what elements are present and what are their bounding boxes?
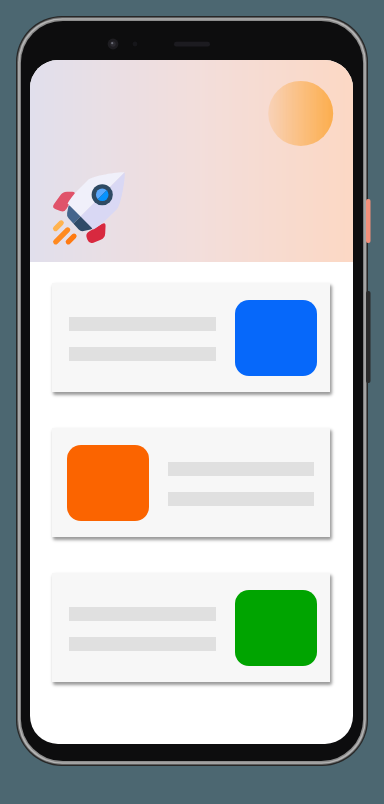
button[interactable]: Open green item: [52, 573, 330, 682]
button[interactable]: Open orange item: [52, 428, 330, 537]
button[interactable]: Open blue item: [52, 283, 330, 392]
